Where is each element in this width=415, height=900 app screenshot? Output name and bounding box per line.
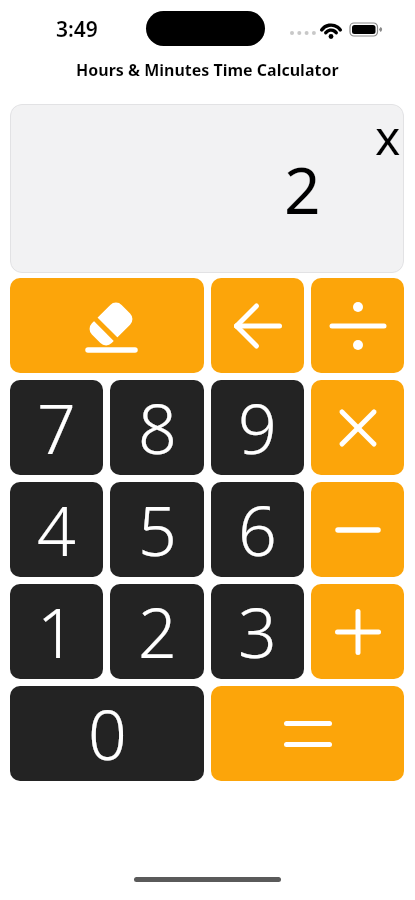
staticText: 2 [284,146,321,226]
button[interactable] [311,380,404,475]
button[interactable] [211,686,404,781]
staticText: 9 [238,381,277,474]
staticText: 5 [138,483,177,576]
button[interactable]: 4 [10,482,103,577]
button[interactable]: 2 [110,584,204,679]
button[interactable] [10,278,204,373]
button[interactable]: 1 [10,584,103,679]
button[interactable]: 6 [211,482,304,577]
button[interactable] [211,278,304,373]
button[interactable] [311,278,404,373]
staticText: 7 [37,381,76,474]
button[interactable]: 8 [110,380,204,475]
button[interactable]: 0 [10,686,204,781]
staticText: 1 [37,585,76,678]
staticText: 8 [138,381,177,474]
staticText: x [375,104,401,169]
button[interactable]: 7 [10,380,103,475]
button[interactable]: 9 [211,380,304,475]
button[interactable]: 5 [110,482,204,577]
staticText: 2 [138,585,177,678]
staticText: 4 [37,483,76,576]
button[interactable] [311,584,404,679]
button[interactable]: 3 [211,584,304,679]
staticText: 3 [238,585,277,678]
staticText: 3:49 [56,15,98,44]
staticText: Hours & Minutes Time Calculator [76,59,339,81]
staticText: 6 [238,483,277,576]
button[interactable] [311,482,404,577]
staticText: 0 [88,687,127,780]
